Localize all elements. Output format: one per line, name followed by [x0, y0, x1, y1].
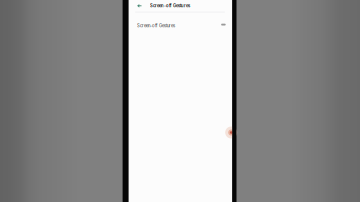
staticText: Screen-off Gestures — [137, 23, 175, 28]
button[interactable]: Screen-off Gestures — [129, 13, 232, 37]
button[interactable]: Back — [135, 2, 143, 10]
staticText: Screen-off Gestures — [150, 3, 190, 8]
